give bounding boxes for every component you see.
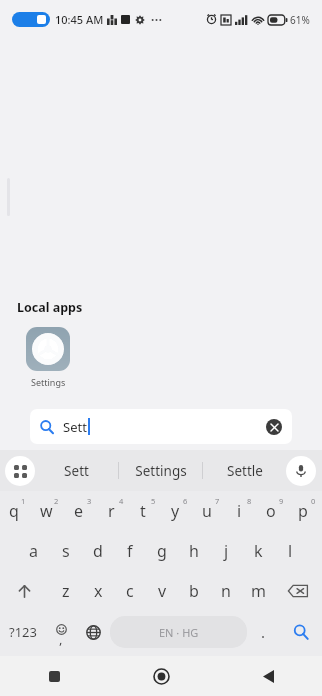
- staticText: b: [189, 580, 199, 602]
- staticText: 7: [215, 496, 220, 506]
- staticText: .: [261, 622, 266, 642]
- staticText: 10:45 AM: [55, 12, 104, 27]
- staticText: 3: [87, 496, 92, 506]
- staticText: 1: [21, 496, 26, 506]
- button[interactable]: l: [274, 531, 306, 571]
- staticText: v: [158, 580, 167, 602]
- staticText: r: [108, 500, 115, 522]
- staticText: 8: [247, 496, 252, 506]
- staticText: ?123: [9, 623, 37, 641]
- staticText: l: [288, 540, 293, 562]
- staticText: Sett: [64, 462, 89, 480]
- button[interactable]: x: [82, 571, 114, 611]
- button[interactable]: u: [194, 491, 226, 531]
- button[interactable]: Search: [280, 611, 322, 653]
- staticText: y: [171, 500, 180, 522]
- button[interactable]: Settings: [22, 327, 74, 388]
- staticText: 0: [311, 496, 316, 506]
- button[interactable]: Settle: [203, 450, 286, 491]
- staticText: g: [157, 540, 167, 562]
- button[interactable]: y: [162, 491, 194, 531]
- staticText: Local apps: [17, 299, 83, 316]
- staticText: x: [94, 580, 103, 602]
- button[interactable]: .: [247, 611, 280, 653]
- staticText: c: [126, 580, 134, 602]
- staticText: Settings: [135, 462, 187, 480]
- button[interactable]: z: [49, 571, 82, 611]
- button[interactable]: t: [130, 491, 162, 531]
- staticText: 5: [151, 496, 156, 506]
- button[interactable]: m: [242, 571, 274, 611]
- staticText: 6: [183, 496, 188, 506]
- button[interactable]: Voice input: [286, 456, 316, 486]
- button[interactable]: e: [66, 491, 98, 531]
- staticText: EN · HG: [159, 625, 199, 640]
- staticText: k: [254, 540, 263, 562]
- button[interactable]: p: [290, 491, 322, 531]
- button[interactable]: Sett: [30, 409, 292, 444]
- staticText: d: [93, 540, 103, 562]
- button[interactable]: n: [210, 571, 242, 611]
- button[interactable]: s: [50, 531, 82, 571]
- button[interactable]: h: [178, 531, 210, 571]
- staticText: f: [127, 540, 133, 562]
- button[interactable]: f: [114, 531, 146, 571]
- button[interactable]: i: [226, 491, 258, 531]
- button[interactable]: Recent apps: [0, 656, 108, 696]
- staticText: e: [74, 500, 84, 522]
- staticText: Sett: [63, 418, 87, 436]
- button[interactable]: b: [178, 571, 210, 611]
- staticText: t: [140, 500, 146, 522]
- button[interactable]: a: [17, 531, 50, 571]
- button[interactable]: g: [146, 531, 178, 571]
- staticText: i: [237, 500, 242, 522]
- staticText: p: [298, 500, 308, 522]
- button[interactable]: c: [114, 571, 146, 611]
- staticText: j: [224, 540, 229, 562]
- button[interactable]: q: [0, 491, 33, 531]
- button[interactable]: v: [146, 571, 178, 611]
- staticText: a: [29, 540, 38, 562]
- button[interactable]: j: [210, 531, 242, 571]
- button[interactable]: Home: [108, 656, 215, 696]
- button[interactable]: Settings: [119, 450, 202, 491]
- staticText: s: [62, 540, 70, 562]
- staticText: z: [62, 580, 70, 602]
- button[interactable]: w: [33, 491, 66, 531]
- staticText: w: [40, 500, 53, 522]
- button[interactable]: Change language: [77, 611, 110, 653]
- staticText: 4: [119, 496, 124, 506]
- staticText: Settle: [227, 462, 263, 480]
- button[interactable]: Space: [110, 616, 247, 648]
- button[interactable]: d: [82, 531, 114, 571]
- button[interactable]: Back: [215, 656, 322, 696]
- staticText: o: [266, 500, 276, 522]
- staticText: Settings: [31, 376, 66, 388]
- button[interactable]: ?123: [0, 611, 45, 653]
- button[interactable]: r: [98, 491, 130, 531]
- staticText: 61%: [290, 13, 310, 27]
- staticText: m: [251, 580, 266, 602]
- staticText: 2: [54, 496, 59, 506]
- staticText: h: [189, 540, 199, 562]
- staticText: ,: [59, 630, 63, 648]
- button[interactable]: o: [258, 491, 290, 531]
- staticText: u: [202, 500, 212, 522]
- button[interactable]: Keyboard modes: [5, 456, 35, 486]
- button[interactable]: Sett: [35, 450, 118, 491]
- button[interactable]: Clear search: [266, 419, 282, 435]
- button[interactable]: k: [242, 531, 274, 571]
- staticText: q: [9, 500, 19, 522]
- staticText: n: [221, 580, 231, 602]
- button[interactable]: Backspace: [274, 571, 322, 611]
- button[interactable]: Shift: [0, 571, 49, 611]
- staticText: 9: [279, 496, 284, 506]
- button[interactable]: Emoji: [45, 611, 77, 653]
